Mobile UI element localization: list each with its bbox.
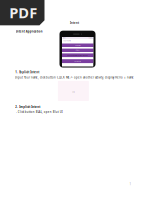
staticText: 100% (88, 37, 92, 39)
staticText: Input Your name, click button CLICK ME -… (15, 76, 134, 79)
staticText: 1. Explicit Intent (15, 70, 39, 74)
button[interactable]: SEND SMS (62, 59, 93, 63)
staticText: PDF (9, 3, 37, 22)
staticText: Intent (70, 21, 79, 25)
staticText: CALL (76, 49, 80, 51)
staticText: 9:41 (63, 37, 66, 39)
staticText: OPEN CHROME NAVIGATION URL (67, 54, 88, 56)
staticText: - Click button BLAL, open Blut UI (16, 110, 63, 114)
staticText: 1 (129, 182, 131, 186)
staticText: 2. Implicit Intent (15, 105, 40, 109)
button[interactable]: CALL (62, 49, 93, 52)
staticText: Hello (72, 91, 75, 93)
staticText: Intent Application (16, 30, 43, 33)
button[interactable]: CLICK ME (62, 43, 93, 47)
staticText: SEND SMS (74, 60, 81, 62)
staticText: Your name (63, 40, 71, 42)
button[interactable]: OPEN CHROME NAVIGATION URL (62, 53, 93, 57)
staticText: CLICK ME (75, 44, 81, 46)
